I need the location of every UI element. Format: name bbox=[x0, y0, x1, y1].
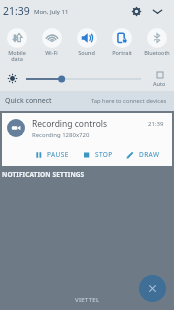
staticText: Mobile data bbox=[8, 49, 26, 63]
staticText: Auto bbox=[153, 80, 166, 87]
button[interactable]: STOP bbox=[84, 143, 126, 166]
staticText: Recording controls bbox=[32, 118, 108, 130]
staticText: DRAW bbox=[139, 150, 160, 159]
staticText: NOTIFICATION SETTINGS bbox=[2, 170, 85, 179]
button[interactable]: Bluetooth bbox=[139, 21, 174, 56]
staticText: Quick connect bbox=[5, 96, 52, 106]
staticText: 21:39 bbox=[3, 4, 30, 18]
button[interactable]: PAUSE bbox=[36, 143, 84, 166]
button[interactable]: Portrait bbox=[104, 21, 139, 56]
staticText: Portrait bbox=[112, 49, 132, 56]
staticText: VIETTEL bbox=[75, 296, 100, 304]
staticText: Recording 1280x720 bbox=[32, 131, 90, 139]
staticText: Mon, July 11 bbox=[34, 8, 69, 16]
button[interactable]: Mobile data bbox=[0, 21, 34, 63]
staticText: Wi-Fi bbox=[45, 49, 58, 56]
button[interactable]: NOTIFICATION SETTINGS bbox=[0, 168, 174, 180]
button[interactable]: Expand quick settings bbox=[148, 2, 166, 20]
staticText: 21:39 bbox=[148, 120, 164, 128]
staticText: Bluetooth bbox=[144, 49, 170, 56]
staticText: Sound bbox=[78, 49, 95, 56]
button[interactable]: Quick connect bbox=[0, 91, 174, 111]
button[interactable]: Wi-Fi bbox=[34, 21, 69, 56]
button[interactable]: Sound bbox=[69, 21, 104, 56]
staticText: Tap here to connect devices bbox=[91, 97, 167, 105]
button[interactable]: DRAW bbox=[126, 143, 172, 166]
button[interactable]: Auto bbox=[150, 71, 169, 87]
button[interactable]: Settings bbox=[127, 2, 145, 20]
staticText: STOP bbox=[95, 150, 113, 159]
button[interactable]: Close panel bbox=[139, 275, 166, 302]
staticText: PAUSE bbox=[47, 150, 69, 159]
